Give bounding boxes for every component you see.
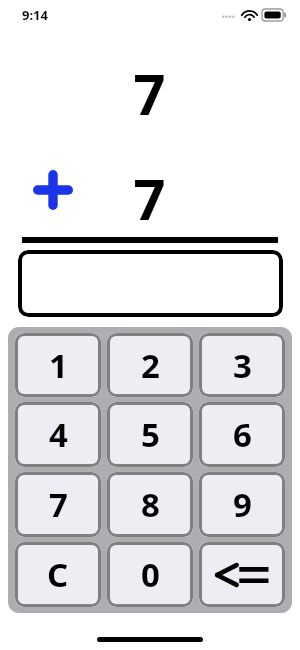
button[interactable]: 5 (107, 402, 193, 467)
staticText: 7 (49, 482, 68, 527)
button[interactable]: 2 (107, 333, 193, 397)
button[interactable]: 3 (199, 333, 285, 397)
button[interactable]: 4 (15, 402, 101, 467)
staticText: 7 (133, 160, 166, 236)
button[interactable]: 8 (107, 472, 193, 537)
button[interactable]: C (15, 542, 101, 607)
staticText: 8 (141, 482, 160, 527)
button[interactable]: 9 (199, 472, 285, 537)
staticText: 5 (141, 412, 160, 457)
button[interactable]: Answer input (18, 250, 283, 317)
staticText: 6 (233, 412, 252, 457)
staticText: C (47, 552, 69, 597)
staticText: 0 (141, 552, 160, 597)
staticText: 1 (49, 343, 68, 388)
staticText: 2 (141, 343, 160, 388)
button[interactable]: 7 (15, 472, 101, 537)
button[interactable]: 1 (15, 333, 101, 397)
staticText: 9 (233, 482, 252, 527)
button[interactable]: Backspace (199, 542, 285, 607)
staticText: 3 (233, 343, 252, 388)
button[interactable]: 6 (199, 402, 285, 467)
staticText: 9:14 (22, 6, 48, 24)
staticText: 7 (133, 55, 166, 131)
staticText: 4 (49, 412, 68, 457)
button[interactable]: Plus operator (31, 168, 75, 212)
button[interactable]: 0 (107, 542, 193, 607)
